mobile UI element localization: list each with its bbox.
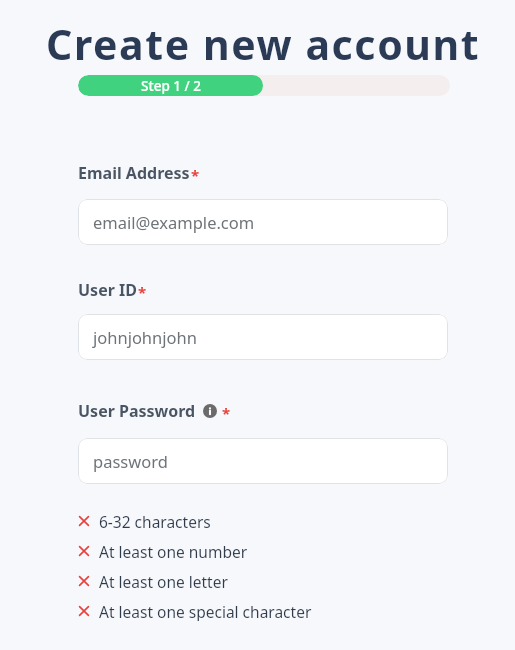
staticText: *	[222, 403, 231, 423]
staticText: *	[138, 282, 147, 302]
button[interactable]: email@example.com	[78, 199, 448, 245]
staticText: *	[191, 165, 200, 185]
staticText: Create new account	[46, 16, 481, 72]
staticText: At least one number	[99, 541, 248, 561]
staticText: johnjohnjohn	[93, 326, 197, 348]
button[interactable]: Password requirements info	[203, 404, 217, 418]
button[interactable]: password	[78, 438, 448, 484]
button[interactable]: Step 1 / 2	[78, 75, 450, 96]
staticText: At least one letter	[99, 571, 228, 591]
staticText: Email Address	[78, 162, 190, 184]
staticText: At least one special character	[99, 601, 312, 621]
staticText: User Password	[78, 400, 196, 422]
staticText: 6-32 characters	[99, 511, 211, 531]
staticText: password	[93, 450, 168, 472]
staticText: Step 1 / 2	[141, 77, 201, 95]
button[interactable]: johnjohnjohn	[78, 314, 448, 360]
staticText: User ID	[78, 279, 137, 301]
staticText: email@example.com	[93, 211, 255, 233]
